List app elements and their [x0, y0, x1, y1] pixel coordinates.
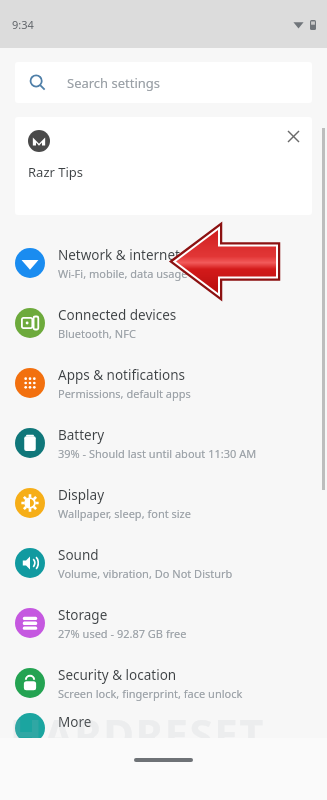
button[interactable]: Security & location [0, 653, 327, 713]
staticText: 27% used - 92.87 GB free [58, 626, 187, 641]
button[interactable]: Display [0, 473, 327, 533]
staticText: Connected devices [58, 306, 177, 324]
button[interactable]: Connected devices [0, 293, 327, 353]
staticText: Battery [58, 426, 105, 444]
button[interactable]: More [0, 713, 327, 743]
button[interactable]: Razr Tips [15, 117, 312, 215]
staticText: Bluetooth, NFC [58, 326, 136, 341]
staticText: Apps & notifications [58, 366, 185, 384]
staticText: Network & internet [58, 246, 180, 264]
button[interactable]: Dismiss [280, 123, 306, 149]
staticText: 39% - Should last until about 11:30 AM [58, 446, 257, 461]
staticText: 9:34 [12, 17, 34, 32]
button[interactable]: Search settings [15, 62, 312, 103]
staticText: More [58, 713, 92, 731]
staticText: Sound [58, 546, 99, 564]
staticText: Display [58, 486, 105, 504]
button[interactable]: Battery [0, 413, 327, 473]
staticText: Volume, vibration, Do Not Disturb [58, 566, 233, 581]
button[interactable]: Sound [0, 533, 327, 593]
staticText: Wi-Fi, mobile, data usage [58, 266, 188, 281]
staticText: Razr Tips [28, 163, 84, 181]
button[interactable]: Home [134, 758, 193, 762]
staticText: Security & location [58, 666, 177, 684]
button[interactable]: Storage [0, 593, 327, 653]
button[interactable]: Network & internet [0, 233, 327, 293]
staticText: Search settings [67, 74, 161, 92]
staticText: Permissions, default apps [58, 386, 191, 401]
staticText: HARDRESET [10, 705, 265, 762]
staticText: Screen lock, fingerprint, face unlock [58, 686, 243, 701]
staticText: Storage [58, 606, 108, 624]
staticText: Wallpaper, sleep, font size [58, 506, 191, 521]
button[interactable]: Apps & notifications [0, 353, 327, 413]
